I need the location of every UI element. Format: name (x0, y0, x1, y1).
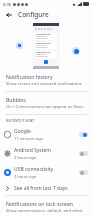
staticText: See all from last 7 days (14, 185, 68, 192)
button[interactable]: Android System (0, 144, 92, 163)
staticText: Show recent and snoozed notifications (6, 81, 82, 87)
staticText: USB connectivity (14, 166, 54, 173)
button[interactable]: Toggle (79, 170, 88, 175)
staticText: RECENTLY SENT (6, 118, 35, 123)
button[interactable]: Notifications on lock screen (0, 196, 92, 216)
button[interactable]: See all from last 7 days (0, 182, 92, 195)
button[interactable]: USB connectivity (0, 163, 92, 182)
staticText: Notifications on lock screen (6, 200, 74, 207)
button[interactable]: Back (4, 10, 14, 20)
button[interactable]: Toggle (79, 132, 88, 137)
button[interactable]: Bubbles (0, 92, 92, 114)
staticText: 2 hours ago (14, 174, 37, 179)
button[interactable]: Google (0, 125, 92, 144)
button[interactable]: Toggle (79, 151, 88, 156)
staticText: Notification history (6, 73, 53, 80)
staticText: 2 hours ago (14, 155, 37, 160)
staticText: Configure notifications (18, 10, 88, 19)
staticText: On / Conversations can appear as floatin… (6, 104, 86, 110)
staticText: Bubbles (6, 96, 26, 103)
staticText: Show conversations, default, and silent (6, 208, 83, 212)
staticText: 11 minutes ago (14, 136, 44, 141)
staticText: 5:05 (3, 2, 11, 7)
staticText: Google (14, 128, 31, 135)
button[interactable]: Notification history (0, 69, 92, 91)
staticText: Android System (14, 147, 52, 154)
